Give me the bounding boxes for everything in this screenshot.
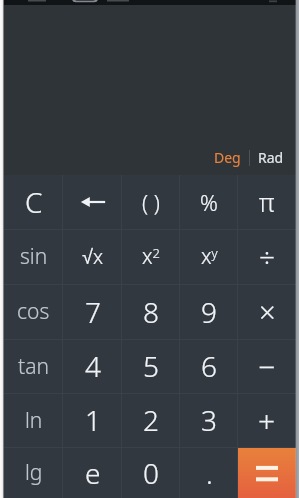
staticText: 6 (201, 347, 217, 385)
button[interactable]: C (4, 175, 63, 229)
staticText: Deg (214, 148, 241, 167)
button[interactable]: Backspace (63, 175, 122, 229)
staticText: + (258, 400, 276, 441)
button[interactable]: √x (63, 229, 122, 284)
staticText: ( ) (142, 187, 160, 217)
button[interactable]: 0 (122, 447, 180, 498)
staticText: 8 (143, 293, 159, 331)
staticText: 3 (201, 401, 217, 439)
staticText: x2 (142, 242, 161, 271)
button[interactable]: ( ) (122, 175, 180, 229)
staticText: 0 (143, 454, 159, 492)
staticText: π (259, 185, 275, 219)
staticText: ln (25, 406, 43, 435)
staticText: ÷ (259, 238, 275, 276)
button[interactable]: 7 (63, 284, 122, 339)
staticText: 5 (143, 347, 159, 385)
button[interactable]: Plus (238, 393, 296, 447)
staticText: 4 (85, 347, 101, 385)
staticText: . (206, 454, 213, 492)
staticText: 1 (85, 401, 101, 439)
button[interactable]: 2 (122, 393, 180, 447)
button[interactable]: 3 (180, 393, 238, 447)
button[interactable]: % (180, 175, 238, 229)
button[interactable]: 4 (63, 339, 122, 393)
button[interactable]: x2 (122, 229, 180, 284)
staticText: tan (18, 352, 49, 381)
button[interactable]: Deg (206, 143, 249, 172)
button[interactable]: Rad (250, 143, 292, 172)
button[interactable]: 9 (180, 284, 238, 339)
staticText: Rad (258, 148, 284, 167)
staticText: 7 (85, 293, 101, 331)
button[interactable]: π (238, 175, 296, 229)
staticText: cos (17, 297, 50, 326)
staticText: 2 (143, 401, 159, 439)
button[interactable]: 6 (180, 339, 238, 393)
button[interactable]: . (180, 447, 238, 498)
staticText: lg (25, 458, 43, 487)
staticText: C (25, 183, 43, 221)
button[interactable]: Minus (238, 339, 296, 393)
staticText: xy (201, 242, 218, 271)
button[interactable]: 5 (122, 339, 180, 393)
button[interactable]: Divide (238, 229, 296, 284)
button[interactable]: cos (4, 284, 63, 339)
staticText: sin (20, 242, 48, 271)
button[interactable]: 1 (63, 393, 122, 447)
staticText: 9 (201, 293, 217, 331)
button[interactable]: Multiply (238, 284, 296, 339)
staticText: e (85, 454, 101, 492)
staticText: − (258, 346, 276, 387)
button[interactable]: lg (4, 447, 63, 498)
button[interactable]: e (63, 447, 122, 498)
staticText: √x (82, 243, 104, 270)
button[interactable]: Equals (238, 447, 296, 498)
button[interactable]: sin (4, 229, 63, 284)
staticText: % (200, 187, 218, 217)
button[interactable]: 8 (122, 284, 180, 339)
staticText: × (259, 292, 276, 331)
button[interactable]: tan (4, 339, 63, 393)
button[interactable]: ln (4, 393, 63, 447)
button[interactable]: xy (180, 229, 238, 284)
